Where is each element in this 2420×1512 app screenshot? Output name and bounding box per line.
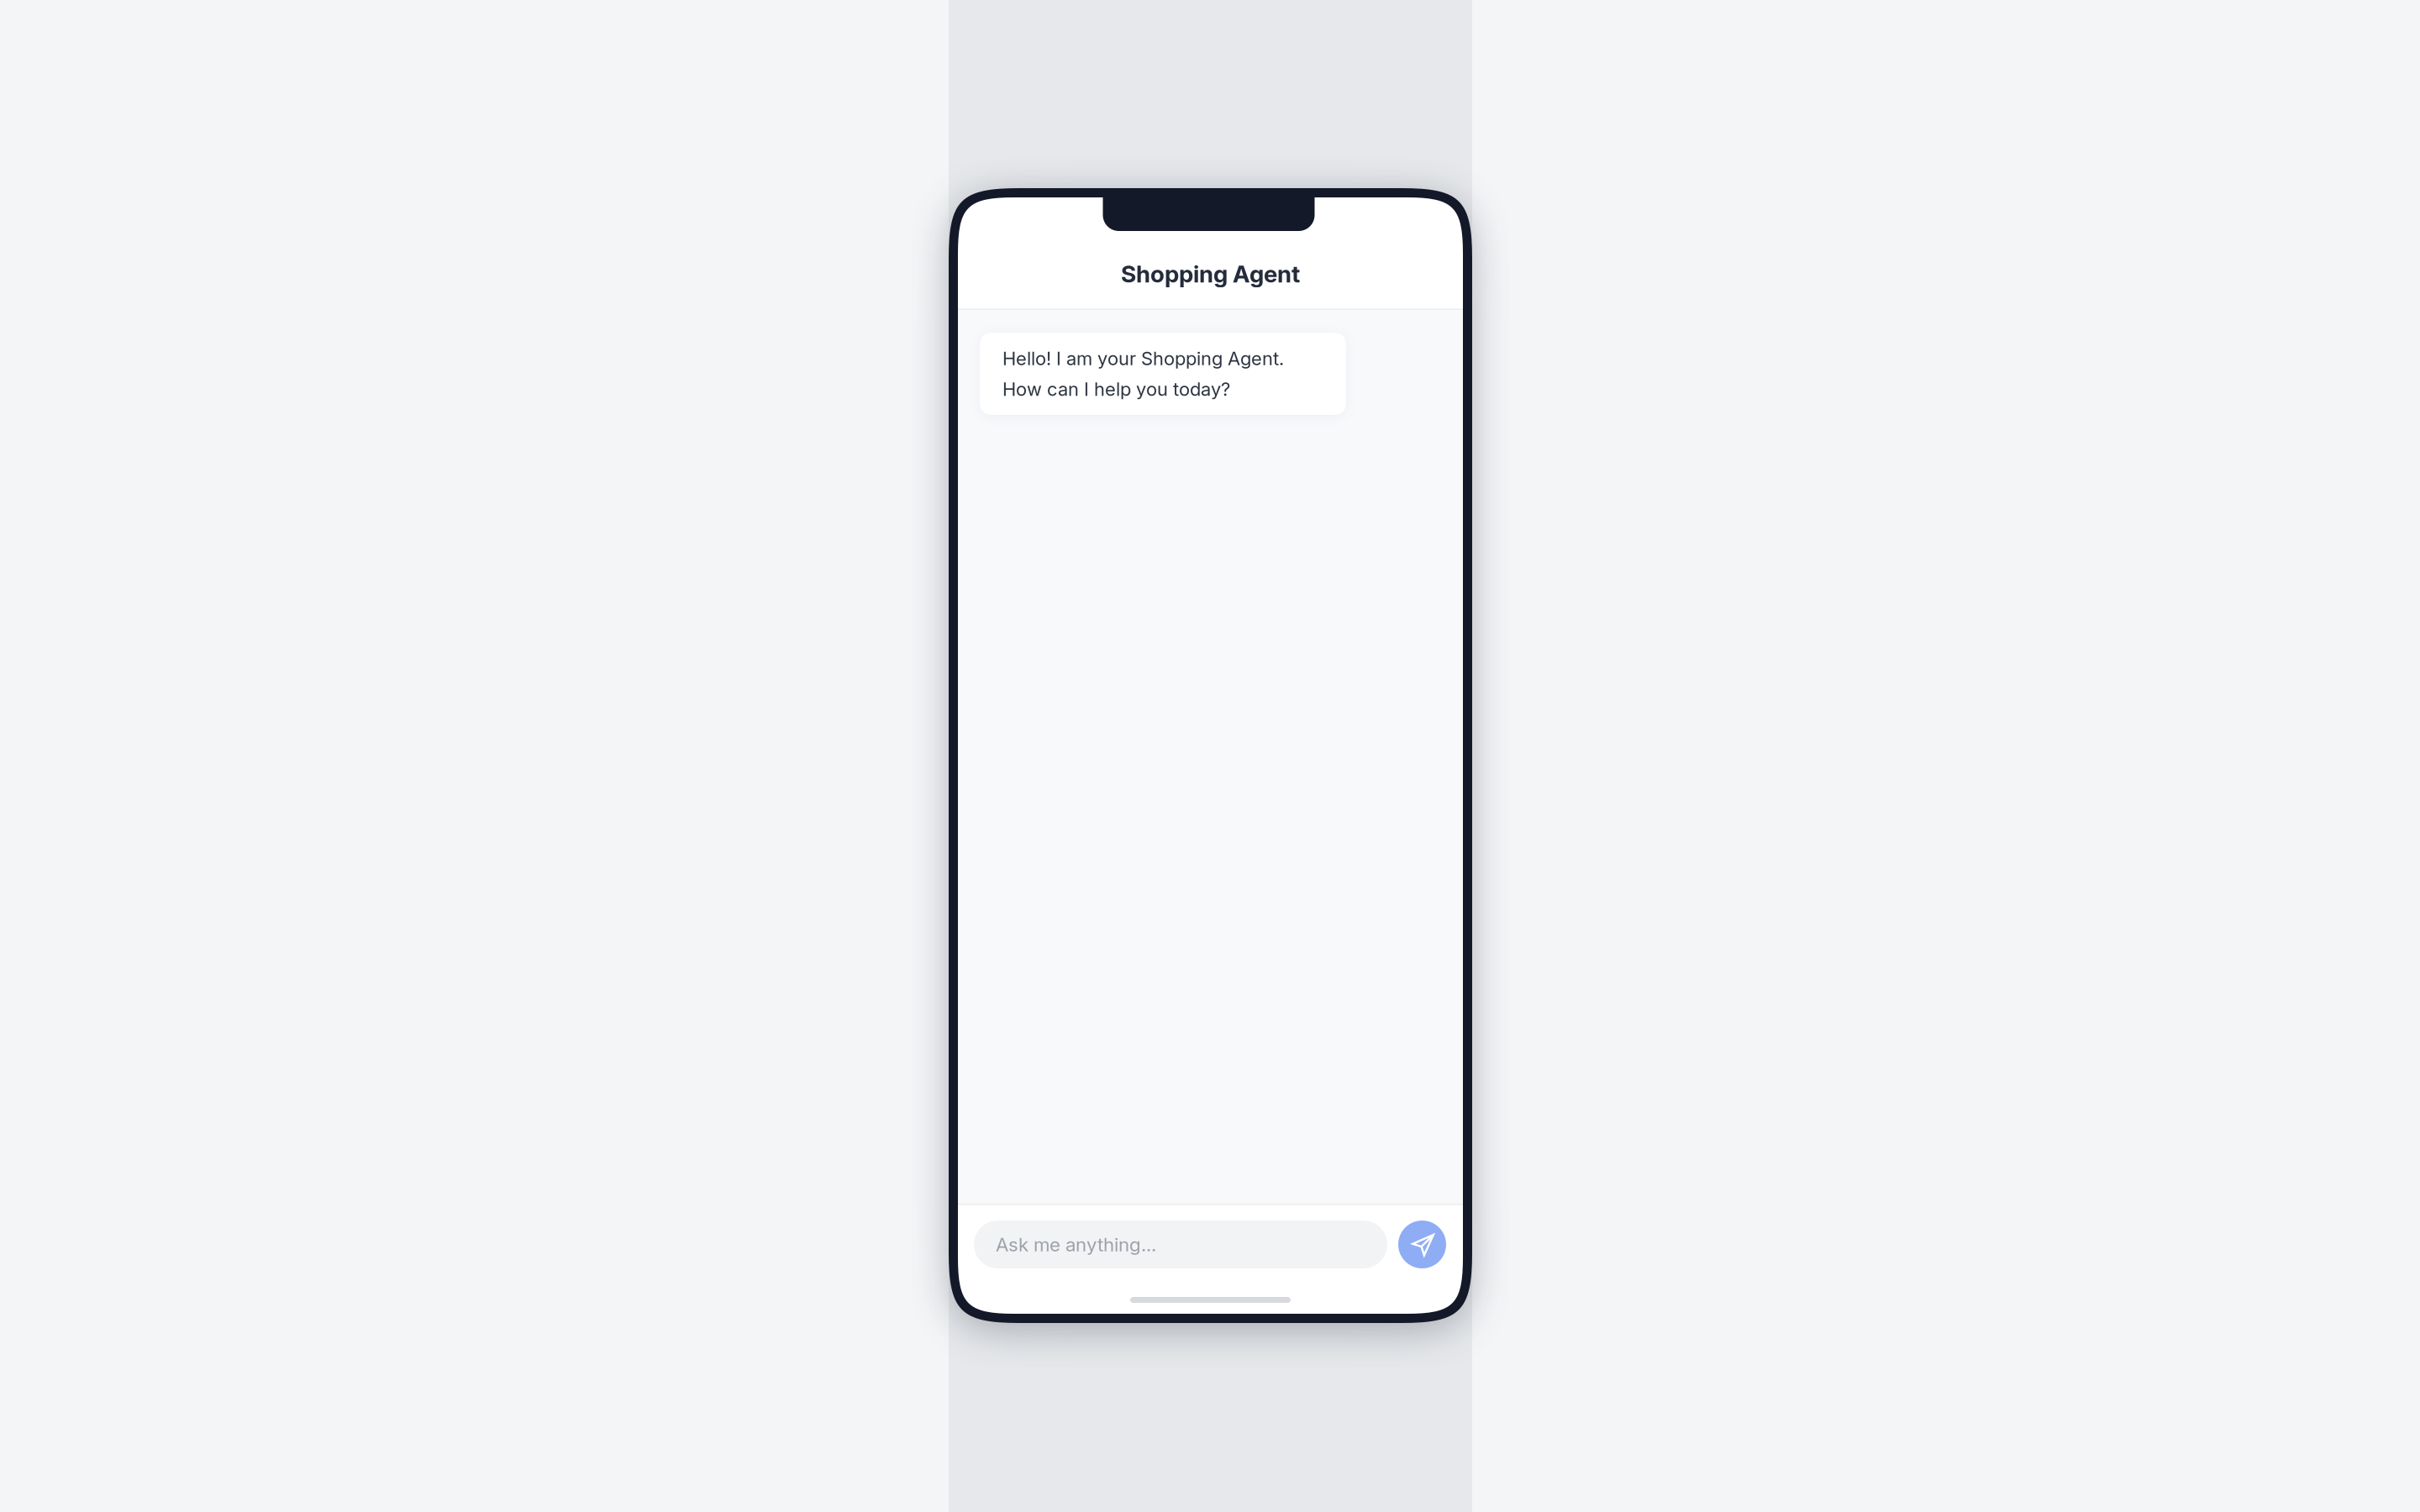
staticText: Ask me anything... (996, 1233, 1156, 1256)
staticText: Hello! I am your Shopping Agent. (1002, 347, 1284, 370)
button[interactable]: Send (1398, 1221, 1446, 1268)
staticText: How can I help you today? (1002, 378, 1230, 400)
button[interactable]: Ask me anything... (974, 1221, 1387, 1268)
staticText: Shopping Agent (1121, 260, 1300, 288)
